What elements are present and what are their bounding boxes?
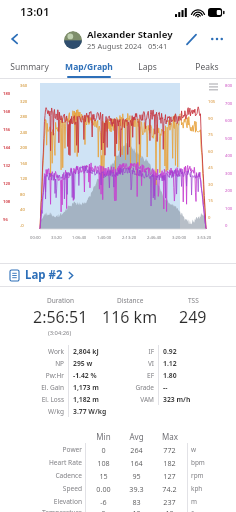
staticText: W/kg — [48, 407, 64, 416]
staticText: bpm — [191, 458, 205, 467]
button[interactable]: Peaks — [177, 54, 236, 79]
staticText: 40 — [20, 207, 25, 213]
staticText: Summary — [10, 61, 49, 73]
button[interactable]: Edit — [178, 26, 204, 52]
staticText: 60 — [208, 149, 213, 155]
staticText: Avg — [129, 431, 144, 442]
button[interactable]: Summary — [0, 54, 59, 79]
staticText: 800 — [225, 83, 233, 89]
staticText: 2:46:40 — [147, 235, 162, 241]
staticText: EF — [147, 371, 154, 380]
staticText: 12 — [132, 508, 141, 512]
staticText: TSS — [188, 296, 199, 305]
staticText: 05:41 — [148, 41, 168, 51]
staticText: 13:01 — [20, 4, 50, 20]
staticText: 108 — [97, 458, 110, 468]
staticText: 295 w — [73, 359, 93, 368]
staticText: Grade — [135, 383, 154, 392]
staticText: 100 — [225, 206, 233, 212]
staticText: 108 — [3, 199, 11, 205]
staticText: IF — [148, 347, 154, 356]
staticText: 132 — [3, 163, 11, 169]
staticText: Pw:Hr — [45, 371, 64, 380]
staticText: El. Loss — [41, 395, 64, 404]
staticText: 400 — [225, 153, 233, 159]
staticText: 280 — [20, 114, 28, 120]
button[interactable]: Back — [0, 24, 30, 54]
staticText: NP — [55, 359, 64, 368]
staticText: -- — [163, 383, 168, 392]
staticText: Laps — [138, 61, 157, 73]
staticText: 96 — [3, 217, 8, 223]
staticText: 0 — [225, 223, 228, 229]
button[interactable]: Map/Graph — [59, 54, 118, 79]
staticText: 264 — [130, 445, 143, 455]
staticText: 2:56:51 — [33, 306, 88, 328]
staticText: 90 — [208, 116, 213, 122]
staticText: 75 — [208, 132, 213, 138]
staticText: 320 — [20, 99, 28, 105]
staticText: Power — [62, 445, 82, 454]
staticText: 74.2 — [162, 484, 177, 494]
staticText: 300 — [225, 171, 233, 177]
button[interactable]: More options — [204, 26, 230, 52]
staticText: 30 — [208, 182, 213, 188]
staticText: kph — [191, 484, 203, 493]
staticText: 160 — [20, 161, 28, 167]
staticText: 237 — [163, 497, 176, 507]
staticText: (3:04:26) — [48, 329, 72, 337]
staticText: 164 — [130, 458, 143, 468]
staticText: 1,182 m — [73, 395, 99, 404]
staticText: 3.77 W/kg — [73, 407, 107, 416]
staticText: Heart Rate — [48, 458, 82, 467]
staticText: -6 — [100, 497, 107, 507]
staticText: 116 km — [102, 306, 158, 328]
staticText: Alexander Stanley — [87, 28, 173, 41]
staticText: rpm — [191, 471, 204, 480]
staticText: 772 — [163, 445, 176, 455]
staticText: 3:53:20 — [197, 235, 212, 241]
staticText: 182 — [163, 458, 176, 468]
staticText: -1.42 % — [73, 371, 97, 380]
staticText: 1,173 m — [73, 383, 99, 392]
button[interactable]: Laps — [118, 54, 177, 79]
staticText: 39.3 — [129, 484, 144, 494]
staticText: 360 — [20, 83, 28, 89]
staticText: 25 August 2024 — [87, 41, 142, 51]
staticText: 180 — [3, 91, 11, 97]
staticText: 33:20 — [51, 235, 62, 241]
button[interactable]: Alexander Stanley — [64, 28, 173, 51]
staticText: Max — [162, 431, 178, 442]
staticText: Min — [96, 431, 111, 442]
staticText: 1:40:00 — [97, 235, 112, 241]
staticText: 45 — [208, 165, 213, 171]
staticText: 168 — [3, 109, 11, 115]
staticText: 0.92 — [163, 347, 177, 356]
staticText: 1.12 — [163, 359, 177, 368]
button[interactable]: Lap #2 — [0, 264, 236, 286]
staticText: Peaks — [195, 61, 219, 73]
staticText: 15 — [99, 471, 108, 481]
staticText: c — [191, 508, 195, 512]
staticText: 15 — [208, 198, 213, 204]
staticText: Work — [47, 347, 64, 356]
staticText: 144 — [3, 145, 11, 151]
staticText: 3:20:00 — [172, 235, 187, 241]
staticText: 105 — [208, 99, 216, 105]
staticText: 18 — [165, 508, 174, 512]
staticText: 700 — [225, 101, 233, 107]
staticText: Map/Graph — [65, 61, 113, 73]
staticText: VAM — [140, 395, 154, 404]
staticText: 127 — [163, 471, 176, 481]
staticText: 120 — [20, 176, 28, 182]
staticText: Distance — [117, 296, 144, 305]
staticText: 200 — [225, 188, 233, 194]
staticText: 200 — [20, 145, 28, 151]
staticText: 1:06:40 — [72, 235, 87, 241]
staticText: El. Gain — [41, 383, 64, 392]
staticText: VI — [147, 359, 154, 368]
staticText: 0.00 — [96, 484, 111, 494]
staticText: 2:13:20 — [122, 235, 137, 241]
staticText: Elevation — [53, 497, 82, 506]
staticText: 0 — [208, 215, 211, 221]
